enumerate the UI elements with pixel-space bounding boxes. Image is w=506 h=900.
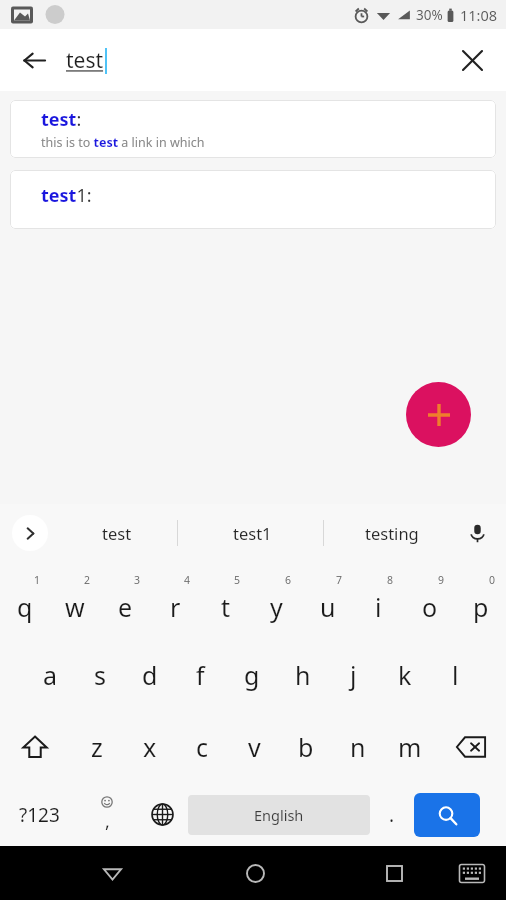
button[interactable]: test1 — [196, 510, 308, 556]
staticText: c — [196, 730, 209, 764]
button[interactable]: test — [62, 510, 172, 556]
staticText: p — [473, 590, 489, 624]
staticText: 4 — [184, 573, 191, 587]
button[interactable]: v — [228, 711, 280, 783]
staticText: k — [398, 658, 412, 692]
staticText: 6 — [285, 573, 292, 587]
button[interactable]: Change language — [136, 783, 188, 846]
button[interactable]: More suggestions — [12, 515, 48, 551]
button[interactable]: Search — [414, 793, 480, 837]
button[interactable]: o — [404, 567, 455, 639]
button[interactable]: b — [280, 711, 332, 783]
staticText: 7 — [336, 573, 343, 587]
button[interactable]: x — [123, 711, 176, 783]
staticText: z — [91, 730, 103, 764]
staticText: u — [320, 590, 336, 624]
staticText: q — [17, 590, 33, 624]
staticText: ?123 — [19, 802, 60, 828]
staticText: b — [298, 730, 314, 764]
button[interactable]: q — [0, 567, 50, 639]
staticText: i — [375, 590, 382, 624]
staticText: y — [270, 590, 283, 624]
staticText: n — [350, 730, 366, 764]
staticText: 0 — [489, 573, 496, 587]
staticText: v — [248, 730, 261, 764]
button[interactable]: . — [370, 783, 414, 846]
staticText: test1 — [233, 522, 272, 544]
staticText: s — [94, 658, 106, 692]
button[interactable]: i — [353, 567, 404, 639]
staticText: e — [118, 590, 133, 624]
staticText: test: — [41, 107, 82, 132]
staticText: o — [422, 590, 438, 624]
button[interactable]: Add — [406, 382, 471, 447]
staticText: English — [254, 805, 304, 825]
button[interactable]: Emoji — [78, 783, 136, 846]
staticText: this is to test a link in which — [41, 134, 205, 151]
button[interactable]: p — [455, 567, 506, 639]
staticText: w — [65, 590, 85, 624]
button[interactable]: a — [25, 639, 75, 711]
staticText: test — [66, 46, 104, 75]
staticText: , — [105, 809, 110, 834]
staticText: 3 — [134, 573, 141, 587]
staticText: . — [389, 802, 395, 828]
button[interactable]: m — [384, 711, 436, 783]
button[interactable]: g — [226, 639, 277, 711]
button[interactable]: Recents — [370, 849, 418, 897]
button[interactable]: test: — [10, 100, 496, 158]
staticText: l — [452, 658, 459, 692]
button[interactable]: test1: — [10, 170, 496, 229]
button[interactable]: h — [277, 639, 328, 711]
button[interactable]: w — [50, 567, 100, 639]
button[interactable]: testing — [336, 510, 448, 556]
staticText: g — [244, 658, 260, 692]
button[interactable]: Back — [12, 38, 56, 82]
button[interactable]: l — [430, 639, 481, 711]
button[interactable]: u — [302, 567, 353, 639]
button[interactable]: t — [200, 567, 251, 639]
staticText: d — [142, 658, 158, 692]
staticText: 11:08 — [460, 5, 498, 25]
staticText: testing — [365, 522, 419, 544]
button[interactable]: ?123 — [0, 783, 78, 846]
button[interactable]: n — [332, 711, 384, 783]
button[interactable]: r — [150, 567, 200, 639]
button[interactable]: y — [251, 567, 302, 639]
button[interactable]: Clear — [450, 38, 494, 82]
button[interactable]: Home — [231, 849, 279, 897]
staticText: test — [102, 522, 132, 544]
button[interactable]: e — [100, 567, 150, 639]
staticText: h — [295, 658, 311, 692]
button[interactable]: j — [328, 639, 379, 711]
staticText: 5 — [234, 573, 241, 587]
staticText: 8 — [387, 573, 394, 587]
staticText: j — [350, 658, 357, 692]
button[interactable]: Switch keyboard — [450, 851, 494, 895]
staticText: x — [143, 730, 157, 764]
staticText: 2 — [84, 573, 91, 587]
staticText: test1: — [41, 183, 92, 208]
button[interactable]: Backspace — [436, 711, 506, 783]
staticText: r — [170, 590, 181, 624]
button[interactable]: Space — [188, 795, 370, 835]
button[interactable]: Shift — [0, 711, 70, 783]
staticText: 30% — [416, 6, 443, 24]
staticText: t — [221, 590, 231, 624]
button[interactable]: Voice input — [458, 514, 496, 552]
staticText: 9 — [438, 573, 445, 587]
staticText: a — [43, 658, 58, 692]
button[interactable]: z — [70, 711, 123, 783]
button[interactable]: c — [176, 711, 228, 783]
button[interactable]: k — [379, 639, 430, 711]
button[interactable]: f — [175, 639, 226, 711]
staticText: f — [196, 658, 205, 692]
staticText: 1 — [34, 573, 41, 587]
button[interactable]: Back — [88, 849, 136, 897]
button[interactable]: d — [125, 639, 175, 711]
staticText: m — [398, 730, 422, 764]
button[interactable]: s — [75, 639, 125, 711]
